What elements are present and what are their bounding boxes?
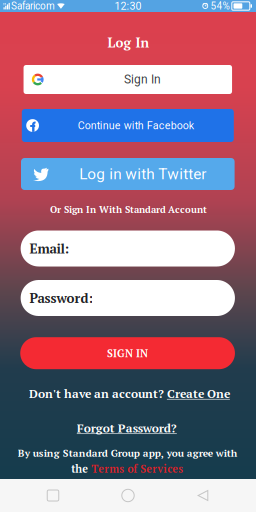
button[interactable]: Password: — [21, 280, 235, 316]
button[interactable]: Continue with Facebook — [22, 109, 234, 142]
button[interactable]: Forgot Password? — [77, 420, 177, 436]
button[interactable]: Don't have an account? — [29, 386, 230, 401]
staticText: Password: — [29, 289, 93, 307]
button[interactable]: Log in with Twitter — [21, 158, 235, 190]
staticText: Continue with Facebook — [78, 119, 194, 132]
staticText: SIGN IN — [107, 346, 148, 360]
staticText: 12:30 — [114, 0, 141, 12]
button[interactable]: Terms of Services — [91, 462, 183, 476]
staticText: Or Sign In With Standard Account — [50, 203, 207, 216]
staticText: Sign In — [124, 72, 161, 87]
button[interactable]: Email: — [21, 230, 235, 266]
staticText: Forgot Password? — [77, 420, 177, 436]
button[interactable]: Back — [181, 479, 225, 512]
staticText: Don't have an account? — [29, 386, 167, 401]
button[interactable]: Sign In — [23, 65, 232, 94]
button[interactable]: Recent apps — [31, 479, 75, 512]
staticText: Create One — [167, 386, 230, 401]
staticText: Log in with Twitter — [79, 165, 206, 183]
staticText: Log In — [108, 34, 150, 51]
staticText: the — [71, 462, 91, 476]
staticText: Email: — [29, 240, 69, 257]
button[interactable]: Home — [106, 479, 150, 512]
staticText: Terms of Services — [91, 462, 183, 476]
staticText: 54% — [211, 0, 230, 12]
staticText: Safaricom — [11, 0, 55, 12]
button[interactable]: SIGN IN — [20, 337, 235, 369]
staticText: By using Standard Group app, you agree w… — [18, 446, 237, 460]
